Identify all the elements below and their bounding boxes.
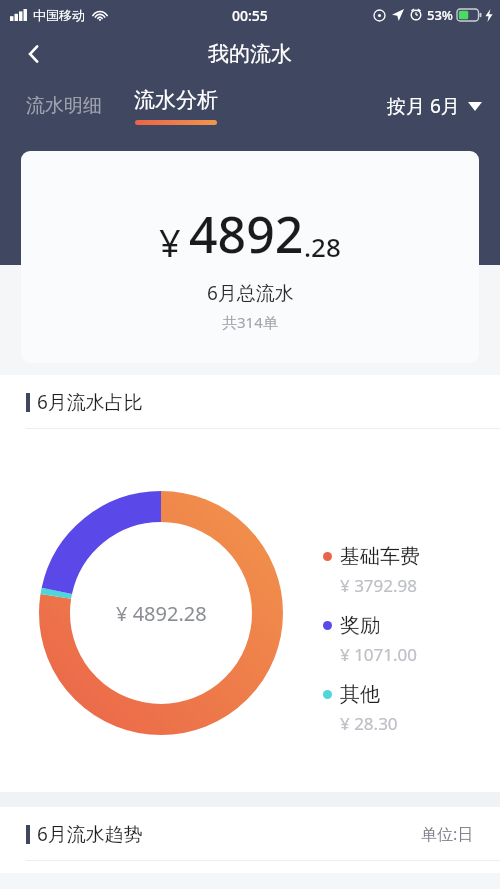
button[interactable]: 基础车费 — [323, 544, 420, 597]
staticText: 流水分析 — [134, 87, 218, 113]
staticText: 6月流水趋势 — [37, 821, 143, 847]
staticText: 单位:日 — [421, 823, 474, 845]
button[interactable]: 流水明细 — [22, 88, 106, 124]
button[interactable]: Back — [14, 34, 54, 74]
staticText: 其他 — [340, 682, 380, 707]
staticText: 中国移动 — [33, 7, 85, 23]
staticText: ¥ 4892.28 — [116, 600, 207, 627]
button[interactable]: 其他 — [323, 682, 398, 735]
staticText: ¥ 3792.98 — [340, 574, 418, 597]
staticText: ¥ 1071.00 — [340, 643, 418, 666]
staticText: .28 — [304, 229, 341, 264]
staticText: 奖励 — [340, 613, 380, 638]
staticText: 00:55 — [232, 6, 268, 25]
staticText: 按月 6月 — [387, 93, 460, 119]
staticText: 共314单 — [222, 312, 278, 332]
button[interactable]: 流水分析 — [130, 87, 222, 125]
button[interactable]: 按月 6月 — [387, 93, 482, 119]
staticText: 6月流水占比 — [37, 389, 143, 415]
staticText: 4892 — [189, 200, 304, 268]
staticText: 6月总流水 — [207, 280, 294, 306]
button[interactable]: ¥ — [21, 151, 479, 363]
staticText: ¥ 28.30 — [340, 712, 398, 735]
staticText: 流水明细 — [26, 94, 102, 118]
staticText: 53% — [427, 6, 453, 24]
staticText: 基础车费 — [340, 544, 420, 569]
staticText: ¥ — [159, 216, 181, 268]
staticText: 我的流水 — [208, 41, 292, 67]
button[interactable]: 奖励 — [323, 613, 418, 666]
